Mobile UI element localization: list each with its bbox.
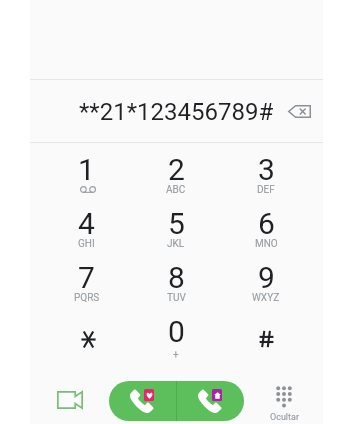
button[interactable]: Call with SIM 1	[109, 381, 176, 421]
staticText: 0	[168, 314, 185, 349]
staticText: PQRS	[74, 292, 100, 304]
staticText: +	[173, 349, 179, 361]
staticText: 7	[78, 260, 95, 295]
button[interactable]	[221, 311, 311, 365]
staticText: 6	[258, 206, 275, 241]
staticText: 8	[168, 260, 185, 295]
button[interactable]: 1	[42, 149, 131, 203]
staticText: Ocultar	[270, 412, 299, 423]
button[interactable]: 9	[221, 257, 311, 311]
staticText: GHI	[78, 238, 95, 250]
button[interactable]: 2	[131, 149, 221, 203]
button[interactable]: 3	[221, 149, 311, 203]
button[interactable]	[42, 311, 131, 365]
staticText: JKL	[167, 238, 185, 250]
staticText: 4	[78, 206, 95, 241]
button[interactable]: 7	[42, 257, 131, 311]
button[interactable]: Video call	[50, 380, 90, 420]
staticText: MNO	[255, 238, 278, 250]
staticText: **21*123456789#	[79, 98, 274, 126]
staticText: 5	[168, 206, 185, 241]
button[interactable]: Call with SIM 2	[177, 381, 244, 421]
staticText: TUV	[167, 292, 186, 304]
button[interactable]: 4	[42, 203, 131, 257]
staticText: 9	[258, 260, 275, 295]
staticText: ABC	[166, 184, 186, 196]
button[interactable]: Backspace	[279, 91, 319, 131]
staticText: WXYZ	[252, 292, 280, 304]
button[interactable]: 5	[131, 203, 221, 257]
button[interactable]: 8	[131, 257, 221, 311]
staticText: 1	[78, 152, 95, 187]
staticText: 3	[258, 152, 275, 187]
button[interactable]: 0	[131, 311, 221, 365]
staticText: DEF	[257, 184, 275, 196]
button[interactable]: Hide keypad	[260, 376, 308, 424]
button[interactable]: 6	[221, 203, 311, 257]
staticText: 2	[168, 152, 185, 187]
